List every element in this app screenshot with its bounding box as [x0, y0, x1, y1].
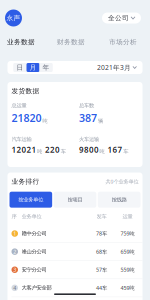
staticText: 全公司	[108, 14, 129, 22]
staticText: 78车	[96, 230, 107, 237]
staticText: 吨	[37, 148, 42, 155]
staticText: 1	[13, 230, 16, 237]
staticText: 日	[16, 63, 23, 72]
button[interactable]: 2021年3月	[97, 63, 136, 72]
staticText: 759吨	[120, 230, 134, 237]
button[interactable]: 全公司	[102, 12, 141, 23]
staticText: 12021	[11, 144, 36, 155]
button[interactable]: 月	[26, 63, 39, 72]
button[interactable]: 账号	[0, 3, 27, 33]
staticText: 吨	[100, 148, 105, 155]
staticText: 辆	[98, 118, 103, 124]
staticText: 167	[108, 144, 123, 155]
staticText: 387	[79, 111, 97, 125]
staticText: 大客户安全部	[21, 285, 51, 291]
staticText: 总车数	[79, 102, 94, 109]
staticText: 序	[11, 213, 16, 220]
staticText: 发货数据	[11, 87, 39, 95]
staticText: 共9个业务单位	[105, 178, 138, 185]
staticText: 57车	[96, 266, 107, 273]
button[interactable]: 按项目	[54, 192, 96, 208]
staticText: 659吨	[120, 248, 134, 255]
staticText: 车	[123, 148, 128, 155]
button[interactable]: 2	[7, 243, 142, 261]
staticText: 永声	[6, 14, 20, 22]
button[interactable]: 按业务单位	[9, 192, 52, 208]
staticText: 2021年3月	[97, 63, 131, 72]
staticText: 44车	[96, 284, 107, 291]
staticText: 发车	[96, 213, 106, 220]
staticText: 559吨	[120, 266, 134, 273]
staticText: 68车	[96, 248, 107, 255]
staticText: 汽车运输	[11, 136, 31, 142]
staticText: 月	[29, 63, 36, 72]
staticText: 4	[13, 284, 16, 291]
button[interactable]: 市场分析	[109, 38, 137, 46]
staticText: 市场分析	[109, 38, 137, 46]
staticText: 459吨	[120, 284, 134, 291]
button[interactable]: 3	[7, 261, 142, 279]
staticText: 财务数据	[57, 38, 85, 46]
staticText: 车	[61, 148, 66, 155]
staticText: 火车运输	[79, 136, 99, 142]
staticText: 9800	[79, 144, 99, 155]
button[interactable]: 日	[13, 63, 26, 72]
staticText: 按项目	[67, 196, 82, 203]
staticText: 按线路	[112, 196, 127, 203]
staticText: 220	[45, 144, 60, 155]
staticText: 赣中分公司	[21, 230, 46, 237]
staticText: 安宁分公司	[21, 266, 46, 273]
button[interactable]: 按线路	[98, 192, 140, 208]
staticText: 21820	[11, 111, 41, 125]
staticText: 业务单位	[21, 213, 41, 220]
button[interactable]: 年	[39, 63, 52, 72]
staticText: 按业务单位	[18, 196, 43, 203]
staticText: 峰山分公司	[21, 248, 46, 255]
staticText: 业务数据	[7, 38, 35, 46]
button[interactable]: 财务数据	[57, 38, 85, 46]
staticText: 总运量	[11, 102, 26, 109]
staticText: 年	[42, 63, 49, 72]
staticText: 吨	[42, 118, 47, 124]
staticText: 运量	[122, 213, 132, 220]
staticText: 业务排行	[11, 177, 39, 186]
button[interactable]: 4	[7, 279, 142, 297]
staticText: 2	[13, 248, 16, 255]
button[interactable]: 业务数据	[7, 38, 35, 46]
staticText: 3	[13, 266, 16, 273]
button[interactable]: 1	[7, 225, 142, 243]
